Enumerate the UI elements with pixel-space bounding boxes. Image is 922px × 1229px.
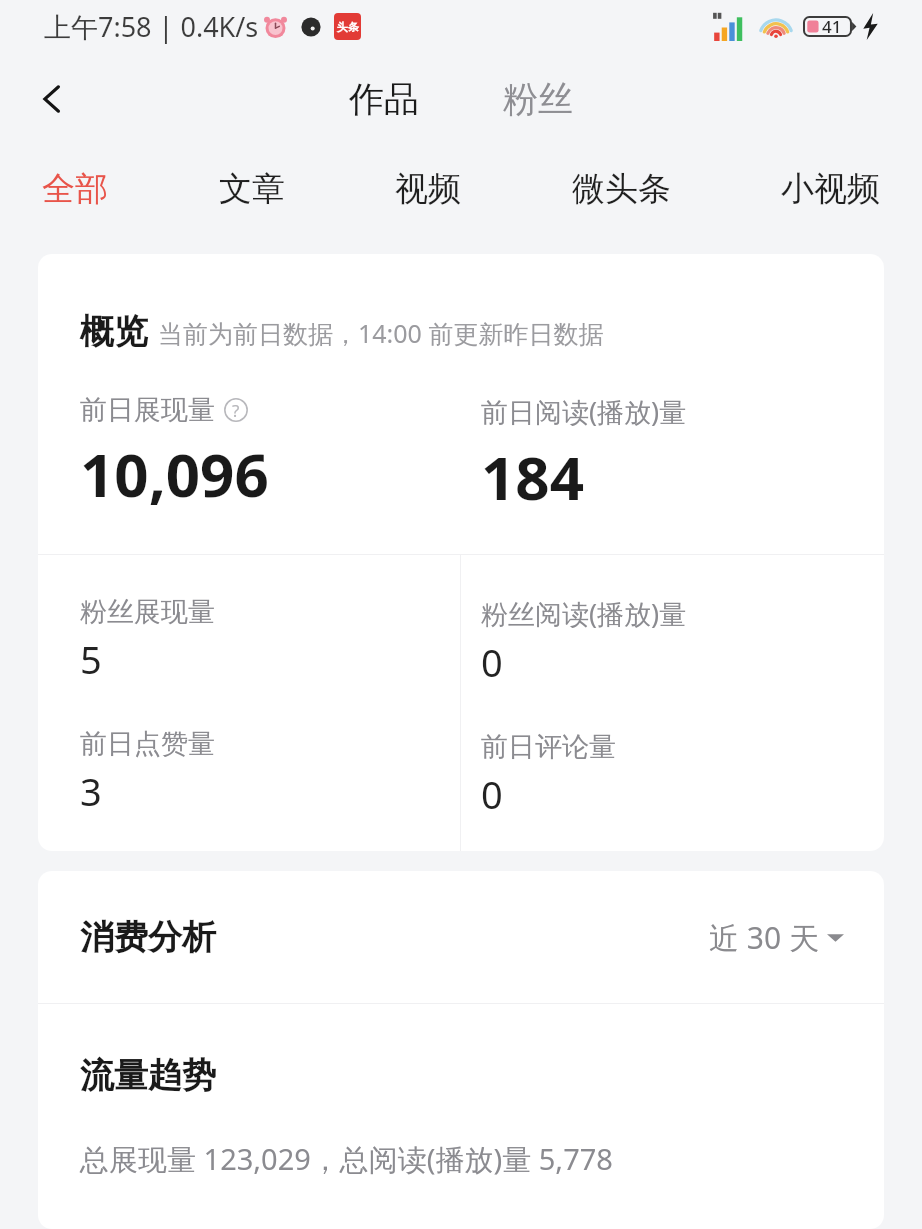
staticText: 上午7:58 | 0.4K/s [44,8,259,45]
staticText: 0 [481,768,503,820]
staticText: 粉丝展现量 [80,595,215,629]
staticText: 作品 [349,77,419,121]
staticText: 前日点赞量 [80,727,215,761]
button[interactable]: 全部 [30,156,120,222]
button[interactable]: 作品 [339,69,429,129]
staticText: 小视频 [781,168,880,210]
staticText: 5 [80,633,102,685]
staticText: 粉丝 [503,77,573,121]
staticText: 前日评论量 [481,730,616,764]
staticText: 全部 [42,168,108,210]
staticText: 文章 [219,168,285,210]
button[interactable]: 微头条 [560,156,683,222]
staticText: 3 [80,765,102,817]
staticText: 近 30 天 [709,917,819,958]
staticText: 10,096 [80,433,269,515]
button[interactable]: 小视频 [769,156,892,222]
button[interactable]: 近 30 天 [703,911,850,964]
staticText: 前日展现量 [80,393,215,427]
staticText: 头条 [337,20,359,34]
staticText: 粉丝阅读(播放)量 [481,595,687,632]
staticText: 概览 [80,310,148,353]
staticText: 视频 [395,168,461,210]
button[interactable]: Back [22,69,82,129]
staticText: 41 [822,15,842,38]
staticText: 流量趋势 [80,1054,216,1097]
button[interactable]: 前日评论量 [481,730,616,820]
button[interactable]: 前日阅读(播放)量 [481,393,884,518]
staticText: 微头条 [572,168,671,210]
staticText: ? [232,399,240,422]
button[interactable]: 粉丝阅读(播放)量 [481,595,687,688]
button[interactable]: 粉丝展现量 [80,595,215,685]
button[interactable]: 前日展现量 [80,393,461,515]
button[interactable]: 前日点赞量 [80,727,215,817]
staticText: 0 [481,636,503,688]
button[interactable]: 粉丝 [493,69,583,129]
staticText: 当前为前日数据，14:00 前更新昨日数据 [158,316,604,350]
staticText: 消费分析 [80,916,216,959]
staticText: 前日阅读(播放)量 [481,393,687,430]
button[interactable]: 文章 [207,156,297,222]
staticText: 总展现量 123,029，总阅读(播放)量 5,778 [80,1139,613,1179]
button[interactable]: 视频 [383,156,473,222]
staticText: 184 [481,436,584,518]
